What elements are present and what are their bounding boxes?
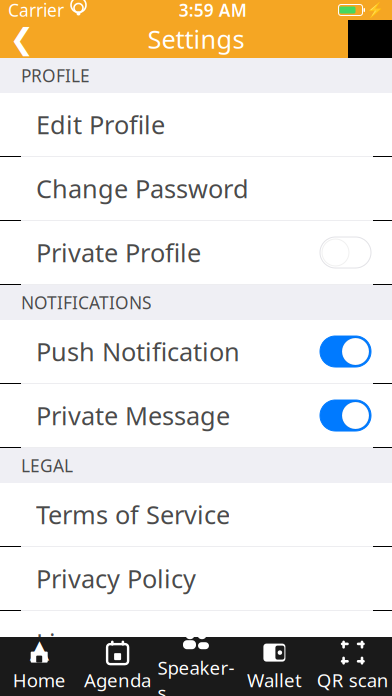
button[interactable]: Wallet <box>235 637 314 696</box>
button[interactable]: Privacy Policy <box>0 547 392 611</box>
button[interactable]: Terms of Service <box>0 483 392 547</box>
button[interactable]: ▲ <box>0 637 78 696</box>
button[interactable]: Change Password <box>0 157 392 221</box>
button[interactable]: Speakers <box>157 637 235 696</box>
staticText: Home <box>13 668 66 692</box>
staticText: QR scan <box>317 668 389 692</box>
staticText: ⚡ <box>366 2 384 18</box>
button[interactable]: Private Message <box>0 384 392 448</box>
button[interactable]: Back <box>0 20 44 58</box>
staticText: ❮ <box>9 22 34 56</box>
staticText: Change Password <box>36 172 249 205</box>
staticText: Licenses <box>36 626 136 659</box>
staticText: Privacy Policy <box>36 562 196 595</box>
staticText: Terms of Service <box>36 498 230 531</box>
staticText: Wallet <box>247 668 302 692</box>
staticText: Private Message <box>36 399 230 432</box>
button[interactable]: Agenda <box>78 637 157 696</box>
staticText: Agenda <box>84 668 151 692</box>
staticText: PROFILE <box>21 64 90 87</box>
staticText: Carrier <box>8 0 64 21</box>
staticText: Push Notification <box>36 335 240 368</box>
staticText: Private Profile <box>36 236 201 269</box>
button[interactable]: Private Profile <box>0 221 392 285</box>
staticText: Edit Profile <box>36 108 165 141</box>
button[interactable]: Licenses <box>0 611 392 675</box>
staticText: ▲ <box>30 634 49 663</box>
button[interactable]: Edit Profile <box>0 93 392 157</box>
button[interactable]: Push Notification <box>0 320 392 384</box>
staticText: Speakers <box>157 655 234 696</box>
staticText: NOTIFICATIONS <box>21 291 152 314</box>
staticText: LEGAL <box>21 454 73 477</box>
staticText: 3:59 AM <box>179 0 247 21</box>
button[interactable]: QR scan <box>314 637 392 696</box>
staticText: Settings <box>147 22 244 56</box>
